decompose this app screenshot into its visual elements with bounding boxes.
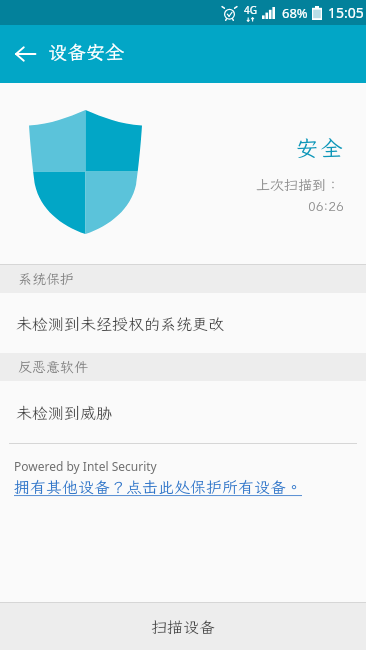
button[interactable]: Back — [5, 34, 45, 74]
staticText: 15:05 — [328, 3, 364, 22]
staticText: 4G — [244, 3, 257, 17]
staticText: 拥有其他设备？点击此处保护所有设备。 — [14, 476, 303, 497]
staticText: 扫描设备 — [151, 616, 216, 637]
staticText: 系统保护 — [18, 270, 74, 288]
staticText: 上次扫描到： — [256, 176, 340, 194]
staticText: 未检测到威胁 — [16, 402, 113, 423]
button[interactable]: 拥有其他设备？点击此处保护所有设备。 — [0, 476, 303, 497]
staticText: Powered by Intel Security — [14, 458, 157, 474]
staticText: 未检测到未经授权的系统更改 — [16, 313, 225, 334]
staticText: 68% — [282, 4, 308, 22]
button[interactable]: 扫描设备 — [0, 603, 366, 650]
staticText: 安全 — [296, 133, 345, 162]
button[interactable]: 未检测到未经授权的系统更改 — [0, 293, 366, 353]
staticText: 06:26 — [308, 198, 344, 215]
staticText: 反恶意软件 — [18, 358, 88, 376]
staticText: 设备安全 — [48, 39, 125, 64]
button[interactable]: 未检测到威胁 — [0, 381, 366, 443]
